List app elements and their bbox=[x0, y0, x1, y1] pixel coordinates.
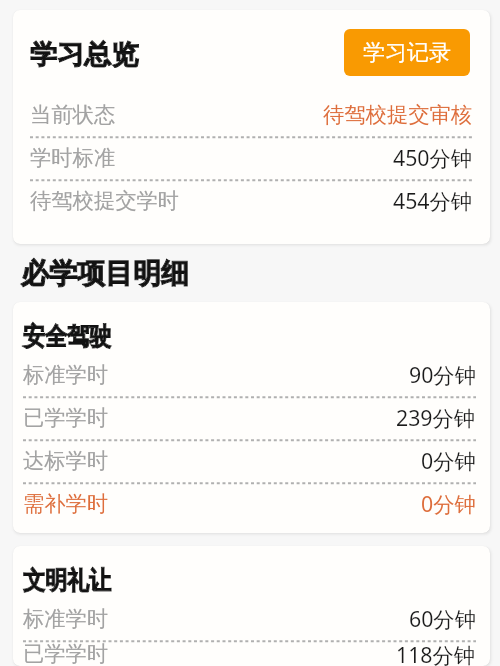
button[interactable]: 待驾校提交学时 bbox=[30, 179, 473, 222]
button[interactable]: 标准学时 bbox=[23, 353, 476, 396]
staticText: 文明礼让 bbox=[23, 565, 111, 596]
staticText: 必学项目明细 bbox=[21, 256, 189, 291]
staticText: 239分钟 bbox=[396, 403, 476, 432]
staticText: 学习总览 bbox=[30, 38, 138, 72]
staticText: 60分钟 bbox=[409, 604, 476, 633]
staticText: 118分钟 bbox=[396, 640, 476, 666]
staticText: 0分钟 bbox=[421, 446, 476, 475]
staticText: 学习记录 bbox=[363, 39, 451, 67]
staticText: 学习总览 bbox=[30, 38, 138, 72]
staticText: 安全驾驶 bbox=[23, 321, 111, 352]
staticText: 已学学时 bbox=[23, 404, 109, 431]
staticText: 当前状态 bbox=[30, 101, 116, 128]
staticText: 454分钟 bbox=[393, 186, 473, 215]
button[interactable]: 需补学时 bbox=[23, 482, 476, 525]
button[interactable]: 学时标准 bbox=[30, 136, 473, 179]
staticText: 0分钟 bbox=[421, 489, 476, 518]
staticText: 待驾校提交审核 bbox=[323, 101, 473, 128]
staticText: 必学项目明细 bbox=[21, 256, 189, 291]
button[interactable]: 已学学时 bbox=[23, 640, 476, 666]
staticText: 达标学时 bbox=[23, 447, 109, 474]
button[interactable]: 已学学时 bbox=[23, 396, 476, 439]
staticText: 标准学时 bbox=[23, 361, 109, 388]
staticText: 学时标准 bbox=[30, 144, 116, 171]
staticText: 标准学时 bbox=[23, 605, 109, 632]
staticText: 450分钟 bbox=[393, 143, 473, 172]
staticText: 90分钟 bbox=[409, 360, 476, 389]
button[interactable]: 学习记录 bbox=[344, 29, 470, 76]
staticText: 已学学时 bbox=[23, 640, 109, 666]
staticText: 需补学时 bbox=[23, 490, 109, 517]
staticText: 安全驾驶 bbox=[23, 321, 111, 352]
button[interactable]: 标准学时 bbox=[23, 597, 476, 640]
button[interactable]: 达标学时 bbox=[23, 439, 476, 482]
staticText: 待驾校提交学时 bbox=[30, 187, 180, 214]
staticText: 文明礼让 bbox=[23, 565, 111, 596]
button[interactable]: 当前状态 bbox=[30, 93, 473, 136]
